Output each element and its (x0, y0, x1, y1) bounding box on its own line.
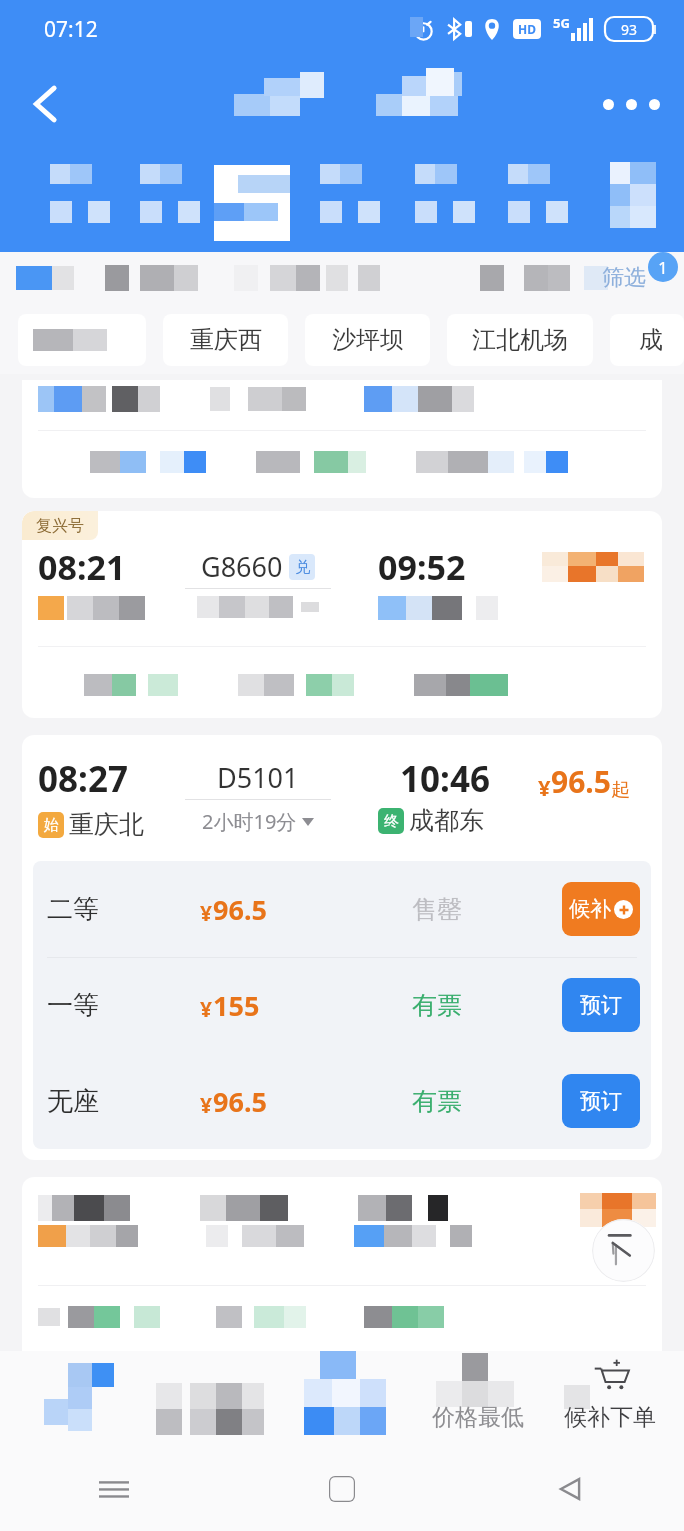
staticText: 10:46 (400, 755, 490, 803)
staticText: 兑 (295, 558, 310, 577)
staticText: 终 (384, 812, 399, 831)
button[interactable]: 沙坪坝 (305, 314, 430, 366)
staticText: 1 (658, 256, 668, 279)
button[interactable]: 成 (610, 314, 684, 366)
staticText: 96.5 (551, 761, 611, 802)
button[interactable] (230, 252, 420, 306)
button[interactable] (0, 1351, 150, 1447)
staticText: 筛选 (602, 264, 646, 292)
button[interactable] (214, 165, 290, 241)
button[interactable] (50, 164, 110, 223)
staticText: 售罄 (412, 894, 462, 925)
staticText: 重庆北 (69, 809, 144, 840)
staticText: 93 (621, 20, 638, 39)
staticText: G8660 (201, 548, 283, 585)
button[interactable] (290, 1351, 420, 1447)
button[interactable]: 候补 (562, 882, 640, 936)
button[interactable] (150, 1351, 280, 1447)
staticText: 有票 (412, 990, 462, 1021)
staticText: 江北机场 (472, 325, 568, 355)
staticText: 无座 (47, 1085, 99, 1118)
button[interactable]: 价格最低 (420, 1351, 550, 1447)
button[interactable] (415, 164, 475, 223)
staticText: 96.5 (213, 1083, 267, 1120)
staticText: 始 (44, 816, 59, 835)
button[interactable]: 预订 (562, 978, 640, 1032)
button[interactable]: 预订 (562, 1074, 640, 1128)
staticText: 价格最低 (432, 1403, 524, 1432)
button[interactable]: 复兴号 (22, 511, 662, 718)
button[interactable]: More options (588, 58, 674, 150)
button[interactable]: Back (14, 58, 76, 150)
button[interactable]: 候补下单 (550, 1351, 684, 1447)
staticText: 07:12 (44, 15, 98, 44)
staticText: 一等 (47, 989, 99, 1022)
button[interactable]: Home (228, 1447, 456, 1531)
button[interactable] (320, 164, 380, 223)
staticText: 09:52 (378, 544, 466, 590)
button[interactable]: 筛选 (548, 252, 684, 306)
button[interactable]: Back (456, 1447, 684, 1531)
staticText: ¥ (538, 772, 551, 802)
staticText: 2小时19分 (202, 808, 297, 835)
staticText: D5101 (217, 759, 299, 796)
staticText: 候补下单 (564, 1403, 656, 1432)
button[interactable] (610, 162, 656, 228)
staticText: 沙坪坝 (332, 325, 404, 355)
button[interactable] (22, 380, 662, 498)
staticText: HD (518, 21, 536, 37)
staticText: 候补 (569, 896, 611, 922)
staticText: 5G (553, 14, 570, 32)
button[interactable] (4, 252, 104, 306)
button[interactable]: 重庆西 (163, 314, 288, 366)
staticText: 有票 (412, 1086, 462, 1117)
staticText: 成 (639, 325, 663, 355)
staticText: 08:21 (38, 544, 126, 590)
staticText: 预订 (580, 1088, 622, 1114)
staticText: ¥ (200, 995, 213, 1024)
staticText: 08:27 (38, 755, 128, 803)
staticText: 155 (213, 987, 260, 1024)
staticText: ¥ (200, 1091, 213, 1120)
button[interactable] (18, 314, 146, 366)
button[interactable] (140, 164, 200, 223)
staticText: 重庆西 (190, 325, 262, 355)
button[interactable] (104, 252, 224, 306)
staticText: 96.5 (213, 891, 267, 928)
button[interactable] (420, 252, 540, 306)
staticText: 起 (611, 778, 630, 802)
staticText: 二等 (47, 893, 99, 926)
button[interactable]: 江北机场 (447, 314, 593, 366)
staticText: 成都东 (409, 805, 484, 836)
button[interactable]: 08:27 (22, 735, 662, 1160)
staticText: 预订 (580, 992, 622, 1018)
staticText: ¥ (200, 899, 213, 928)
button[interactable]: Scroll to top (592, 1219, 655, 1282)
button[interactable] (508, 164, 568, 223)
button[interactable] (22, 1177, 662, 1351)
staticText: 复兴号 (36, 516, 84, 536)
button[interactable]: Recents (0, 1447, 228, 1531)
